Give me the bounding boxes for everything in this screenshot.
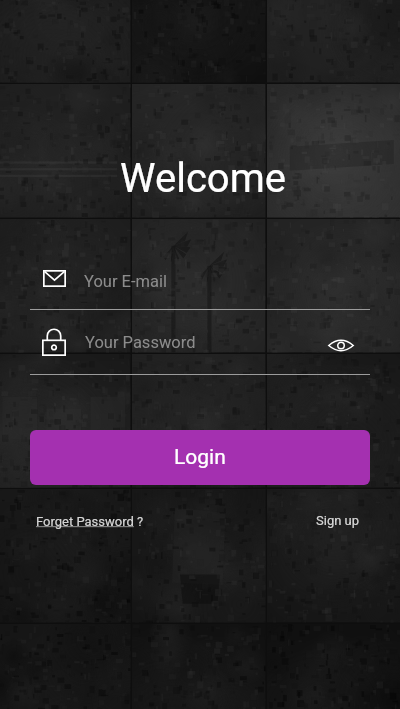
button[interactable]: Your E-mail [43, 261, 370, 301]
button[interactable]: Sign up [316, 513, 360, 528]
staticText: Welcome [3, 155, 400, 202]
button[interactable]: Show password [321, 325, 361, 365]
button[interactable]: Your Password [42, 328, 370, 356]
button[interactable]: Forget Password ? [36, 514, 144, 529]
staticText: Login [174, 445, 226, 470]
button[interactable]: Login [30, 430, 370, 485]
staticText: Sign up [316, 513, 360, 528]
staticText: Your E-mail [84, 272, 167, 291]
staticText: Forget Password ? [36, 514, 144, 529]
staticText: Your Password [85, 333, 196, 352]
